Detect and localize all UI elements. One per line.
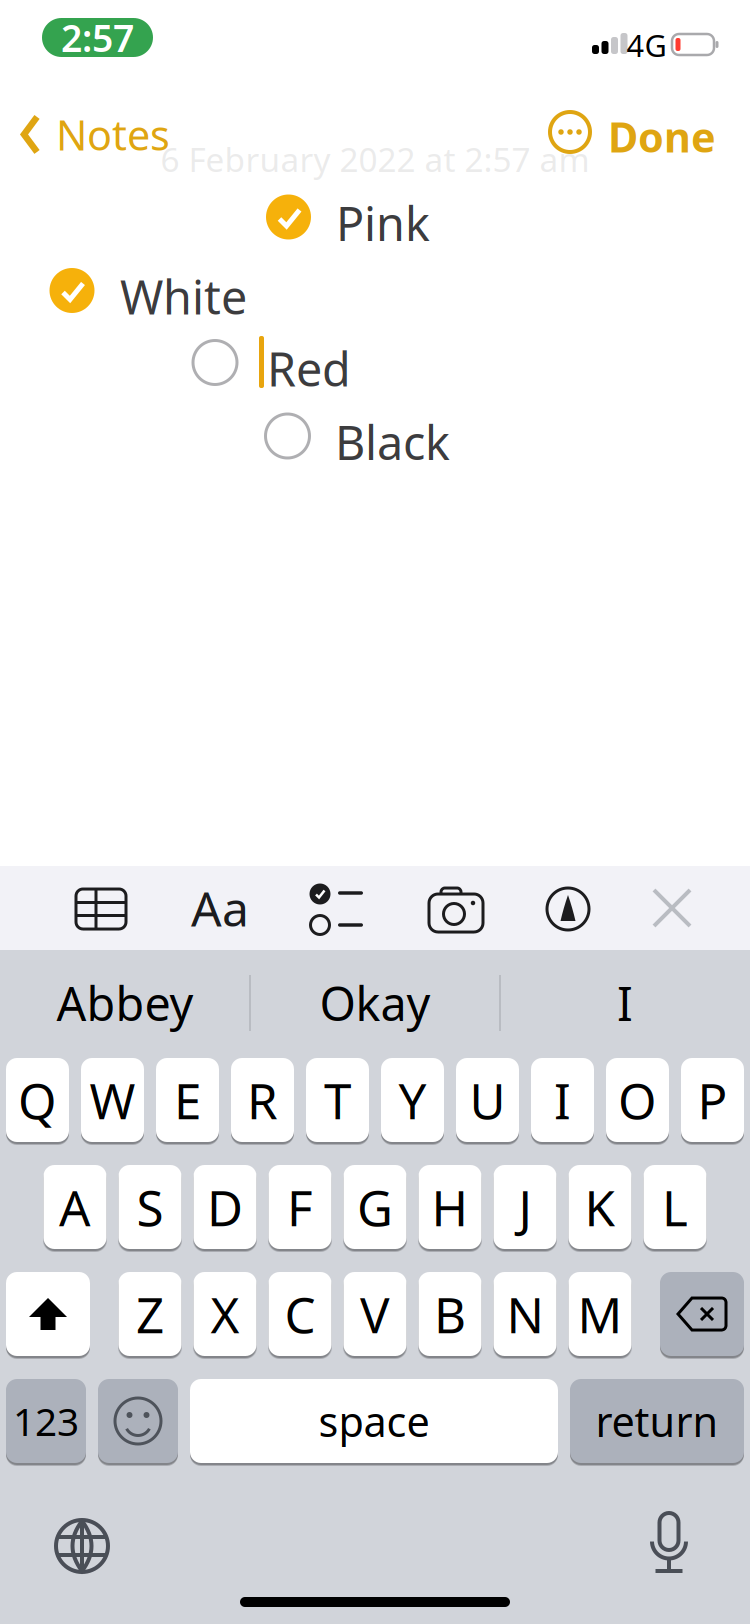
staticText: B	[434, 1281, 466, 1347]
staticText: Abbey	[56, 972, 193, 1034]
staticText: I	[554, 1067, 571, 1133]
staticText: 2:57	[61, 13, 134, 62]
staticText: Notes	[56, 107, 170, 162]
button[interactable]: B	[418, 1272, 481, 1356]
button[interactable]: Abbey	[1, 963, 249, 1043]
button[interactable]: U	[456, 1058, 519, 1142]
staticText: J	[518, 1174, 531, 1240]
button[interactable]: O	[606, 1058, 669, 1142]
staticText: U	[469, 1067, 505, 1133]
button[interactable]: Camera	[429, 886, 483, 932]
button[interactable]: I	[501, 963, 749, 1043]
button[interactable]: E	[156, 1058, 219, 1142]
button[interactable]: Dictate	[648, 1513, 690, 1571]
staticText: A	[59, 1174, 91, 1240]
staticText: H	[431, 1174, 468, 1240]
staticText: K	[584, 1174, 615, 1240]
staticText: Okay	[319, 972, 430, 1034]
staticText: 123	[13, 1395, 79, 1447]
button[interactable]: return	[570, 1379, 744, 1463]
button[interactable]: T	[306, 1058, 369, 1142]
button[interactable]: Checklist	[309, 883, 363, 935]
button[interactable]: H	[418, 1165, 481, 1249]
button[interactable]: Markup	[547, 888, 589, 930]
staticText: space	[318, 1394, 429, 1448]
button[interactable]: Delete	[660, 1272, 744, 1356]
button[interactable]: S	[118, 1165, 181, 1249]
staticText: 4G	[626, 25, 666, 65]
staticText: G	[357, 1174, 393, 1240]
button[interactable]: V	[343, 1272, 406, 1356]
staticText: N	[506, 1281, 543, 1347]
button[interactable]: Shift	[6, 1272, 90, 1356]
button[interactable]: Emoji	[98, 1379, 178, 1463]
staticText: M	[577, 1281, 622, 1347]
staticText: R	[247, 1067, 278, 1133]
staticText: Q	[18, 1067, 57, 1133]
button[interactable]: P	[681, 1058, 744, 1142]
button[interactable]: More	[550, 112, 590, 152]
button[interactable]: Next keyboard	[56, 1520, 108, 1572]
staticText: P	[697, 1067, 727, 1133]
button[interactable]: I	[531, 1058, 594, 1142]
button[interactable]: space	[190, 1379, 558, 1463]
button[interactable]: K	[568, 1165, 631, 1249]
staticText: Black	[335, 411, 450, 473]
button[interactable]: D	[193, 1165, 256, 1249]
staticText: F	[287, 1174, 313, 1240]
button[interactable]: 123	[6, 1379, 86, 1463]
staticText: L	[662, 1174, 688, 1240]
button[interactable]: Z	[118, 1272, 181, 1356]
staticText: C	[284, 1281, 315, 1347]
button[interactable]: Notes	[21, 107, 170, 162]
button[interactable]: Unchecked: Black	[265, 414, 309, 458]
staticText: Y	[398, 1067, 426, 1133]
button[interactable]: A	[43, 1165, 106, 1249]
staticText: V	[360, 1281, 390, 1347]
button[interactable]: N	[493, 1272, 556, 1356]
button[interactable]: 2:57	[42, 18, 153, 57]
button[interactable]: Insert table	[76, 889, 126, 929]
staticText: White	[120, 265, 247, 327]
staticText: T	[324, 1067, 351, 1133]
staticText: Red	[267, 337, 351, 399]
button[interactable]: X	[193, 1272, 256, 1356]
staticText: 6 February 2022 at 2:57 am	[160, 137, 589, 181]
button[interactable]: F	[268, 1165, 331, 1249]
button[interactable]: Checked: White	[49, 268, 94, 313]
staticText: O	[618, 1067, 657, 1133]
button[interactable]: Close	[652, 888, 692, 928]
staticText: W	[89, 1067, 135, 1133]
button[interactable]: Q	[6, 1058, 69, 1142]
button[interactable]: M	[568, 1272, 631, 1356]
button[interactable]: Formatting	[191, 876, 249, 940]
staticText: Done	[608, 109, 716, 164]
button[interactable]: Y	[381, 1058, 444, 1142]
staticText: Aa	[191, 876, 249, 940]
staticText: S	[136, 1174, 163, 1240]
button[interactable]: L	[643, 1165, 706, 1249]
staticText: Z	[136, 1281, 164, 1347]
button[interactable]: Checked: Pink	[266, 194, 311, 239]
button[interactable]: R	[231, 1058, 294, 1142]
button[interactable]: W	[81, 1058, 144, 1142]
button[interactable]: Unchecked: Red	[193, 340, 237, 384]
staticText: E	[174, 1067, 201, 1133]
staticText: I	[617, 972, 633, 1034]
staticText: D	[207, 1174, 243, 1240]
button[interactable]: Done	[608, 109, 716, 164]
button[interactable]: J	[493, 1165, 556, 1249]
staticText: return	[595, 1394, 718, 1448]
staticText: Pink	[336, 192, 430, 254]
button[interactable]: G	[343, 1165, 406, 1249]
button[interactable]: Okay	[251, 963, 499, 1043]
staticText: X	[210, 1281, 239, 1347]
button[interactable]: C	[268, 1272, 331, 1356]
